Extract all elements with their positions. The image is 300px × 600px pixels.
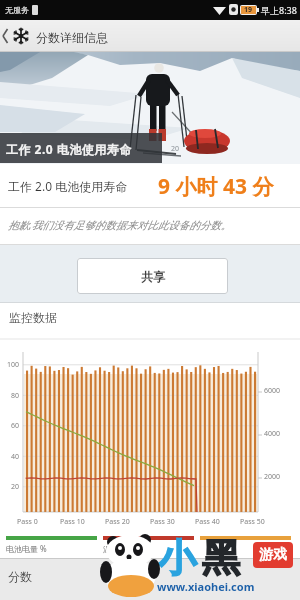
staticText: 40 xyxy=(11,452,20,462)
staticText: 监控数据 xyxy=(9,310,57,325)
button[interactable]: 工作 2.0 电池使用寿命 xyxy=(0,164,300,208)
staticText: 小 xyxy=(158,534,196,582)
button[interactable]: 分数 xyxy=(0,558,300,600)
staticText: 100 xyxy=(7,360,20,370)
button[interactable]: 共享 xyxy=(77,258,228,294)
staticText: www.xiaohei.com xyxy=(157,579,255,594)
staticText: 20 xyxy=(171,144,180,154)
staticText: 60 xyxy=(11,421,20,431)
staticText: Pass 50 xyxy=(240,517,265,527)
staticText: 20 xyxy=(11,482,20,492)
staticText: 早上8:38 xyxy=(261,4,297,16)
staticText: 分数 xyxy=(8,569,32,584)
staticText: Pass 40 xyxy=(195,517,220,527)
staticText: 工作 2.0 电池使用寿命 xyxy=(8,178,128,194)
staticText: 2000 xyxy=(264,472,281,482)
staticText: Pass 0 xyxy=(17,517,38,527)
staticText: 抱歉,我们没有足够的数据来对比此设备的分数。 xyxy=(8,218,232,232)
staticText: 无服务 xyxy=(5,5,29,15)
staticText: Pass 10 xyxy=(60,517,85,527)
staticText: Pass 20 xyxy=(105,517,130,527)
staticText: Pass 30 xyxy=(150,517,175,527)
staticText: 6000 xyxy=(264,386,281,396)
staticText: 工作 2.0 电池使用寿命 xyxy=(6,141,132,157)
staticText: 19 xyxy=(244,5,253,15)
staticText: 9 小时 43 分 xyxy=(158,172,274,201)
staticText: 游戏 xyxy=(259,546,287,564)
staticText: 温度 °C xyxy=(103,543,130,554)
staticText: 4000 xyxy=(264,429,281,439)
staticText: 黑 xyxy=(202,534,240,582)
staticText: 分数详细信息 xyxy=(36,30,108,45)
staticText: 80 xyxy=(11,391,20,401)
button[interactable]: 分数详细信息 xyxy=(0,20,300,52)
staticText: 电池电量 % xyxy=(6,543,47,554)
staticText: 共享 xyxy=(141,269,165,284)
